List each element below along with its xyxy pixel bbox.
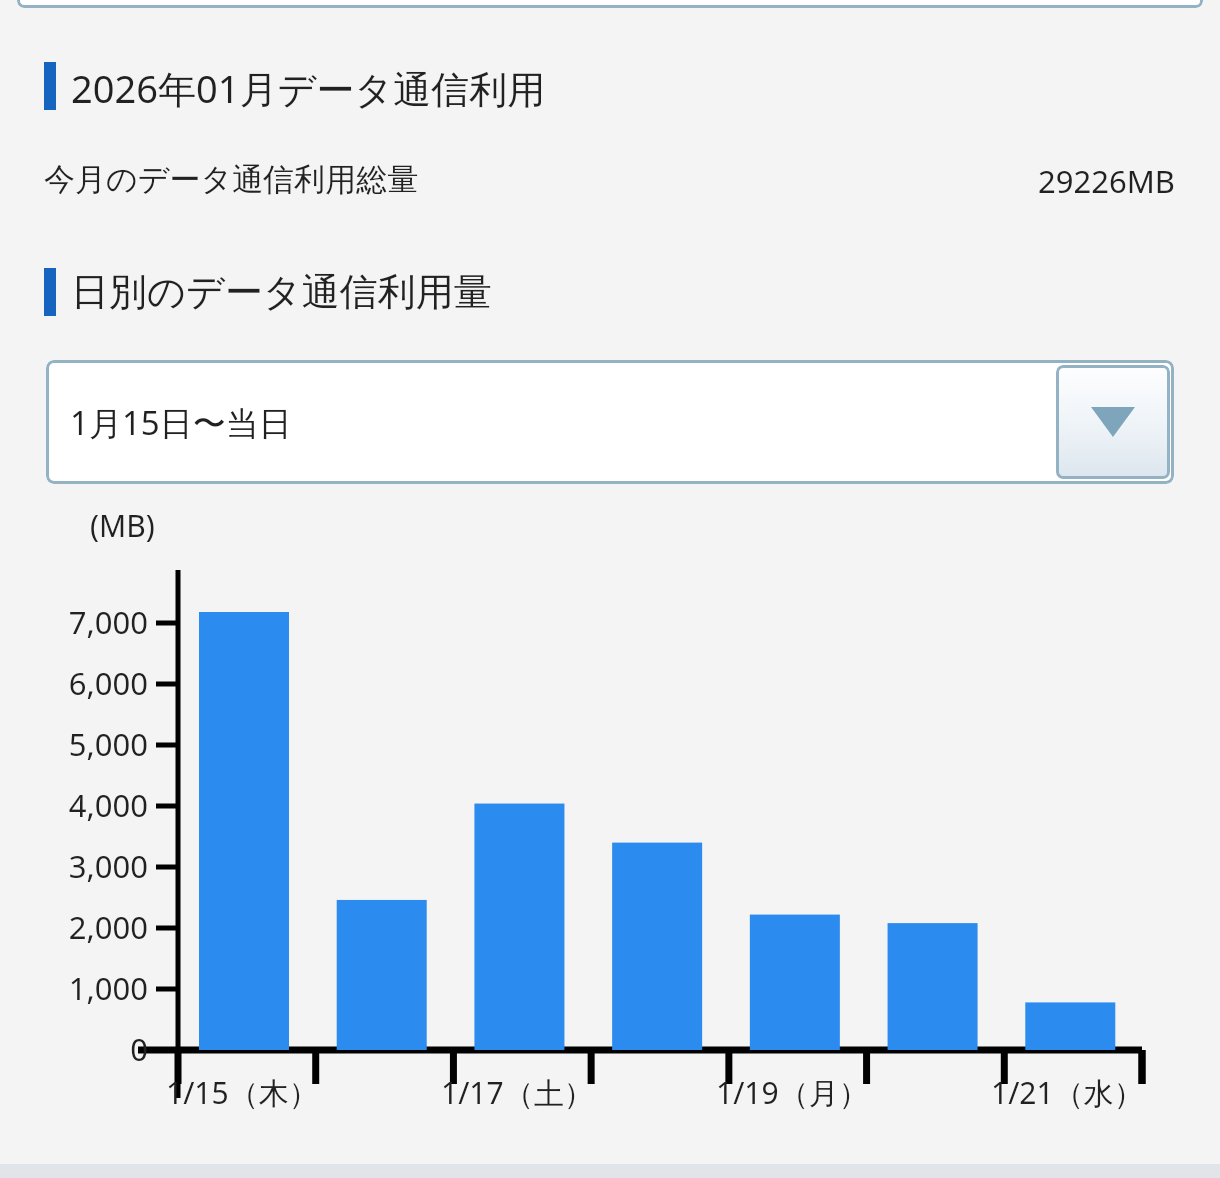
button[interactable]: 1月15日〜当日 — [46, 360, 1174, 484]
staticText: 5,000 — [30, 723, 148, 765]
staticText: 1/21（水） — [991, 1072, 1144, 1113]
staticText: 4,000 — [30, 784, 148, 826]
staticText: 0 — [30, 1028, 148, 1070]
staticText: 3,000 — [30, 845, 148, 887]
staticText: 2026年01月データ通信利用 — [71, 62, 546, 110]
staticText: 7,000 — [30, 601, 148, 643]
staticText: 1/19（月） — [716, 1072, 869, 1113]
staticText: 1/15（木） — [166, 1072, 319, 1113]
staticText: 日別のデータ通信利用量 — [71, 268, 492, 316]
staticText: (MB) — [90, 505, 155, 546]
staticText: 1月15日〜当日 — [70, 400, 292, 445]
staticText: 29226MB — [875, 160, 1175, 202]
staticText: 1/17（土） — [441, 1072, 594, 1113]
staticText: 今月のデータ通信利用総量 — [44, 160, 419, 199]
button[interactable]: 期間を選択 — [1056, 365, 1170, 479]
staticText: 2,000 — [30, 906, 148, 948]
button[interactable] — [17, 0, 1203, 8]
staticText: 1,000 — [30, 967, 148, 1009]
staticText: 6,000 — [30, 662, 148, 704]
